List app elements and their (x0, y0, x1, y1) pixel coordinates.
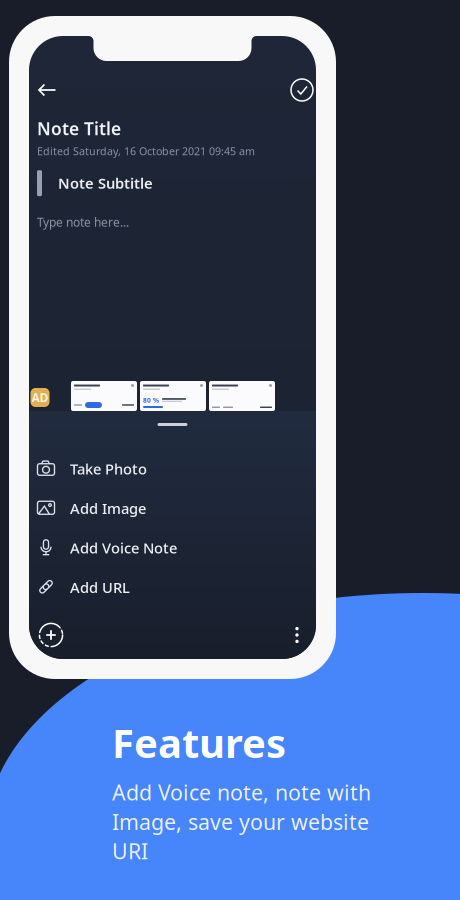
button[interactable]: More options (283, 619, 311, 651)
staticText: Note Subtitle (58, 173, 153, 193)
staticText: Add Image (70, 498, 146, 518)
staticText: AD (31, 389, 48, 405)
staticText: Type note here... (37, 214, 129, 230)
staticText: Take Photo (70, 459, 147, 478)
staticText: Add URL (70, 577, 130, 597)
button[interactable]: Add Image (29, 488, 316, 528)
staticText: Add Voice note, note with Image, save yo… (112, 778, 371, 865)
staticText: Features (112, 716, 286, 769)
button[interactable]: Save note (287, 75, 313, 105)
button[interactable]: Take Photo (29, 449, 316, 488)
staticText: Add Voice Note (70, 538, 177, 557)
button[interactable]: Add URL (29, 567, 316, 607)
staticText: Edited Saturday, 16 October 2021 09:45 a… (37, 144, 255, 158)
staticText: Note Title (37, 117, 121, 140)
staticText: 80 % (143, 396, 159, 404)
button[interactable]: Back (32, 77, 62, 102)
button[interactable]: Add attachment (34, 618, 68, 652)
button[interactable]: Add Voice Note (29, 528, 316, 567)
